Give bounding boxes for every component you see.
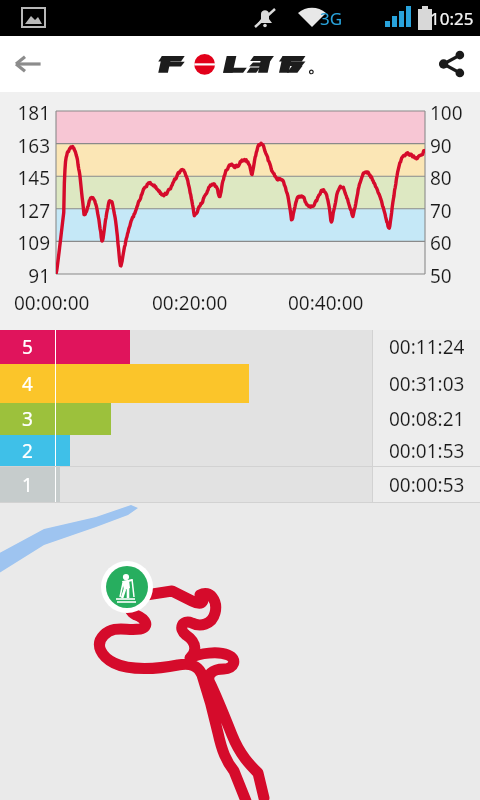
staticText: 1 [22,472,33,498]
staticText: 50 [430,263,452,289]
staticText: 163 [0,133,50,159]
button[interactable]: 1 [0,467,480,502]
button[interactable]: 5 [0,330,480,364]
staticText: 91 [0,263,50,289]
staticText: 3G [320,7,343,30]
staticText: 80 [430,165,452,191]
button[interactable]: 4 [0,364,480,403]
staticText: 5 [22,334,33,360]
staticText: 00:20:00 [152,290,228,316]
staticText: 90 [430,133,452,159]
staticText: 127 [0,198,50,224]
staticText: 00:00:53 [389,472,465,498]
staticText: 00:40:00 [288,290,364,316]
staticText: 00:00:00 [14,290,90,316]
staticText: 10:25 [430,7,474,30]
button[interactable]: 3 [0,403,480,435]
staticText: 00:31:03 [389,371,465,397]
staticText: 181 [0,100,50,126]
staticText: 145 [0,165,50,191]
staticText: 00:11:24 [389,334,465,360]
staticText: 109 [0,230,50,256]
staticText: 70 [430,198,452,224]
staticText: 4 [22,371,33,397]
staticText: 100 [430,100,463,126]
button[interactable] [0,503,480,800]
staticText: 2 [22,438,33,464]
staticText: 00:01:53 [389,438,465,464]
staticText: 60 [430,230,452,256]
button[interactable]: Share [424,36,480,92]
button[interactable]: Back [0,36,56,92]
button[interactable]: 2 [0,435,480,466]
staticText: 3 [22,406,33,432]
staticText: 00:08:21 [389,406,465,432]
